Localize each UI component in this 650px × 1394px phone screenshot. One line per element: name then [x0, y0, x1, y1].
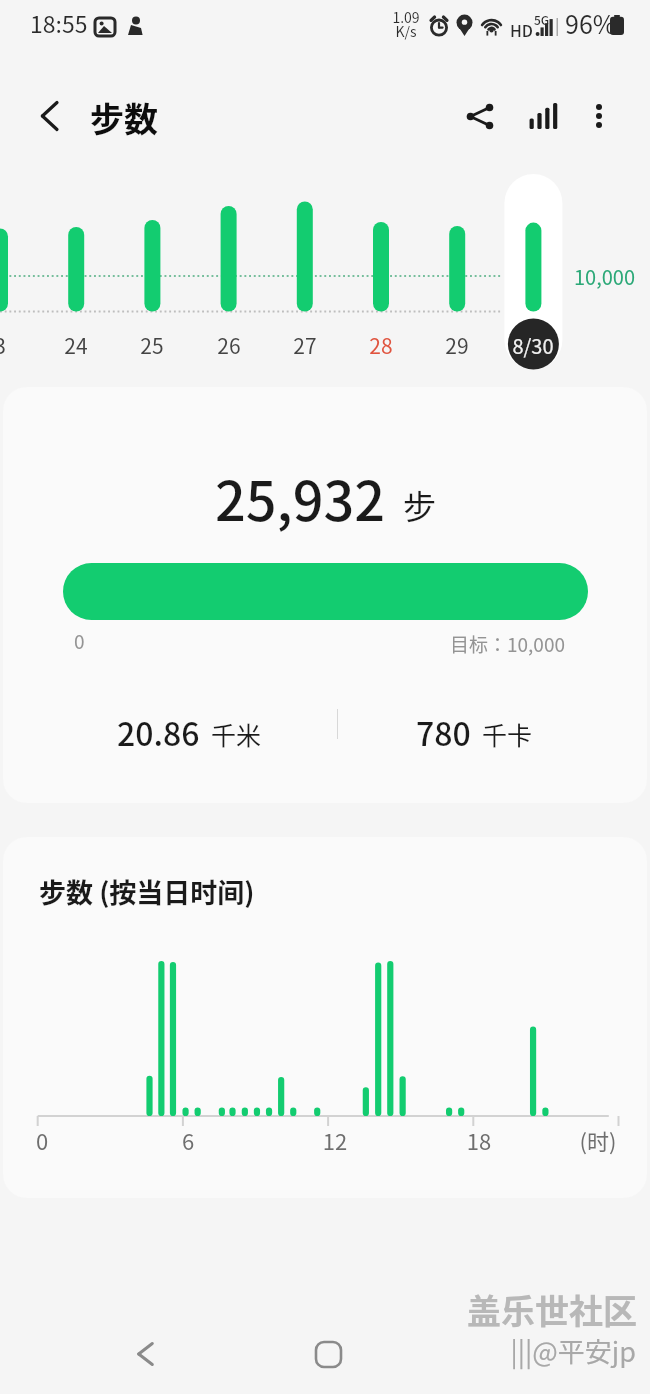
button[interactable]: 8/30 [503, 174, 563, 369]
staticText: 0 [74, 627, 85, 655]
staticText: 25,932 [215, 458, 385, 536]
button[interactable]: 25,932 [3, 387, 647, 803]
staticText: 26 [217, 330, 241, 360]
staticText: 0 [22, 1124, 62, 1156]
staticText: 步数 [90, 93, 158, 142]
button[interactable]: Back [26, 92, 74, 140]
staticText: 27 [293, 330, 317, 360]
staticText: 20.86 [117, 709, 200, 755]
staticText: K/s [391, 21, 421, 41]
staticText: 96% [565, 5, 616, 41]
staticText: (时) [563, 1124, 633, 1156]
staticText: 10,000 [574, 262, 636, 291]
staticText: 25 [140, 330, 164, 360]
button[interactable]: Trends chart [519, 92, 567, 140]
button[interactable]: Back [115, 1324, 175, 1384]
staticText: 18 [459, 1124, 499, 1156]
staticText: 目标：10,000 [429, 630, 565, 658]
staticText: 千卡 [482, 716, 533, 752]
button[interactable]: 26 [199, 175, 259, 370]
staticText: |||@平安jp [470, 1331, 636, 1370]
button[interactable]: More options [575, 92, 623, 140]
button[interactable]: 27 [275, 175, 335, 370]
staticText: 18:55 [30, 6, 88, 39]
staticText: 步 [403, 481, 436, 529]
staticText: 1.09 [391, 7, 421, 27]
button[interactable]: 25 [122, 175, 182, 370]
staticText: 12 [315, 1124, 355, 1156]
staticText: 780 [416, 709, 471, 755]
staticText: 3 [0, 330, 6, 360]
staticText: 28 [369, 330, 393, 360]
staticText: HD [510, 18, 534, 41]
staticText: 步数 (按当日时间) [39, 872, 255, 911]
staticText: 24 [64, 330, 88, 360]
button[interactable]: Recent apps [488, 1324, 548, 1384]
button[interactable]: 28 [351, 175, 411, 370]
button[interactable]: 步数 (按当日时间) [3, 837, 647, 1198]
button[interactable]: Home [298, 1324, 358, 1384]
staticText: 千米 [211, 716, 262, 752]
button[interactable]: 29 [427, 175, 487, 370]
staticText: 6 [168, 1124, 208, 1156]
button[interactable]: 24 [46, 175, 106, 370]
staticText: 盖乐世社区 [467, 1285, 637, 1334]
staticText: 5G [534, 11, 550, 28]
button[interactable]: 3 [0, 175, 30, 370]
staticText: 8/30 [512, 331, 554, 360]
staticText: 29 [445, 330, 469, 360]
button[interactable]: Share [456, 92, 504, 140]
